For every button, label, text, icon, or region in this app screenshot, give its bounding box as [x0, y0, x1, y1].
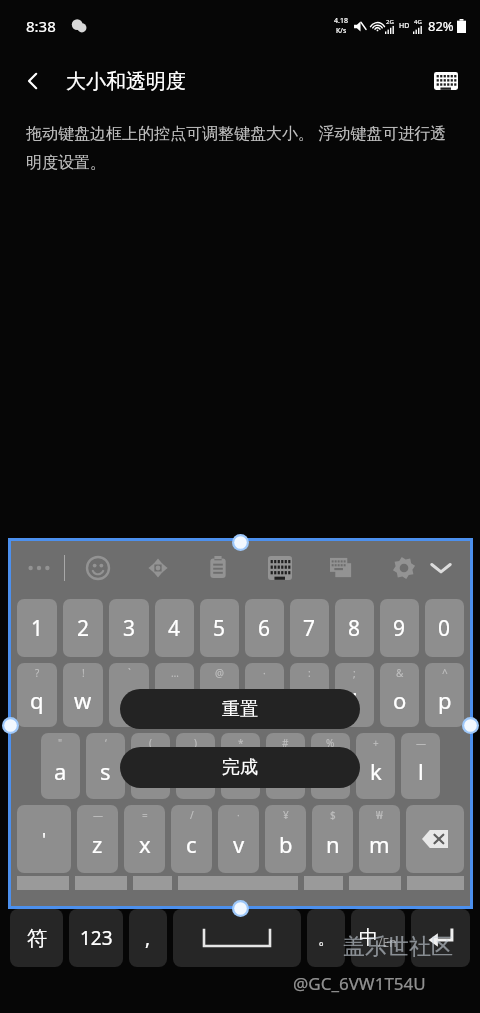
button[interactable]: 符 — [10, 909, 63, 967]
staticText: t — [216, 685, 224, 715]
button[interactable]: — — [401, 733, 440, 799]
button[interactable]: ; — [335, 663, 374, 727]
button[interactable]: Settings — [387, 551, 421, 585]
staticText: 3 — [123, 614, 136, 643]
button[interactable]: ^ — [425, 663, 464, 727]
button[interactable]: Back — [10, 58, 56, 104]
button[interactable]: 完成 — [120, 747, 360, 788]
staticText: 0 — [438, 614, 451, 643]
button[interactable]: ! — [63, 663, 103, 727]
button[interactable]: 5 — [200, 599, 239, 657]
staticText: = — [142, 808, 148, 822]
button[interactable]: ) — [176, 733, 215, 799]
button[interactable]: · — [218, 805, 259, 873]
button[interactable]: Move — [141, 551, 175, 585]
staticText: 9 — [393, 614, 406, 643]
staticText: HD — [399, 21, 410, 31]
button[interactable]: ‘ — [86, 733, 125, 799]
staticText: x — [139, 829, 151, 859]
button[interactable]: 8 — [335, 599, 374, 657]
staticText: " — [58, 736, 63, 750]
staticText: ( — [149, 736, 152, 750]
staticText: a — [54, 756, 67, 786]
button[interactable]: / — [171, 805, 212, 873]
staticText: $ — [330, 808, 336, 822]
staticText: 拖动键盘边框上的控点可调整键盘大小。 浮动键盘可进行透明度设置。 — [26, 122, 454, 172]
staticText: i — [352, 685, 358, 715]
button[interactable]: … — [155, 663, 194, 727]
staticText: 6 — [258, 614, 271, 643]
button[interactable]: 0 — [425, 599, 464, 657]
button[interactable]: ¥ — [265, 805, 306, 873]
button[interactable]: 3 — [109, 599, 149, 657]
button[interactable]: * — [221, 733, 260, 799]
button[interactable]: Delete — [406, 805, 464, 873]
button[interactable]: Keyboard layout — [263, 551, 297, 585]
button[interactable]: More — [22, 551, 56, 585]
staticText: & — [396, 666, 404, 680]
button[interactable]: ` — [109, 663, 149, 727]
staticText: p — [438, 685, 452, 715]
button[interactable]: 。 — [307, 909, 345, 967]
button[interactable]: 6 — [245, 599, 284, 657]
button[interactable]: Emoji — [81, 551, 115, 585]
staticText: · — [237, 808, 240, 822]
button[interactable]: : — [290, 663, 329, 727]
button[interactable]: Clipboard — [201, 551, 235, 585]
button[interactable]: ? — [17, 663, 57, 727]
button[interactable]: · — [245, 663, 284, 727]
button[interactable]: = — [124, 805, 165, 873]
staticText: /En — [378, 934, 397, 950]
staticText: * — [238, 736, 244, 750]
button[interactable]: ' — [17, 805, 71, 873]
button[interactable]: Space — [173, 909, 301, 967]
staticText: 4.18 — [334, 16, 348, 26]
button[interactable]: " — [41, 733, 80, 799]
staticText: 。 — [318, 928, 335, 949]
staticText: , — [145, 925, 151, 951]
staticText: z — [92, 829, 103, 859]
staticText: u — [303, 685, 317, 715]
staticText: o — [393, 685, 407, 715]
staticText: ¥ — [283, 808, 289, 822]
staticText: q — [30, 685, 44, 715]
staticText: 4G — [414, 18, 422, 26]
button[interactable]: 1 — [17, 599, 57, 657]
staticText: % — [326, 736, 335, 750]
button[interactable]: 重置 — [120, 689, 360, 729]
button[interactable]: Enter — [411, 909, 470, 967]
button[interactable]: # — [266, 733, 305, 799]
staticText: 大小和透明度 — [66, 69, 186, 94]
button[interactable]: % — [311, 733, 350, 799]
staticText: 2G — [386, 18, 394, 26]
button[interactable]: 7 — [290, 599, 329, 657]
button[interactable]: 中 — [351, 909, 405, 967]
staticText: ‘ — [105, 736, 107, 750]
button[interactable]: 4 — [155, 599, 194, 657]
staticText: 完成 — [222, 756, 258, 779]
button[interactable]: $ — [312, 805, 353, 873]
button[interactable]: ( — [131, 733, 170, 799]
staticText: ' — [42, 827, 47, 852]
button[interactable]: 123 — [69, 909, 123, 967]
staticText: 4 — [168, 614, 181, 643]
staticText: ` — [128, 666, 131, 680]
staticText: ) — [194, 736, 197, 750]
button[interactable]: + — [356, 733, 395, 799]
button[interactable]: & — [380, 663, 419, 727]
staticText: e — [123, 685, 136, 715]
button[interactable]: @ — [200, 663, 239, 727]
button[interactable]: Collapse — [423, 550, 459, 586]
button[interactable]: 2 — [63, 599, 103, 657]
staticText: 7 — [303, 614, 316, 643]
button[interactable]: 9 — [380, 599, 419, 657]
button[interactable]: , — [129, 909, 167, 967]
button[interactable]: — — [77, 805, 118, 873]
staticText: 符 — [27, 926, 47, 951]
button[interactable]: Keyboard — [424, 59, 468, 103]
button[interactable]: ₩ — [359, 805, 400, 873]
staticText: 8 — [348, 614, 361, 643]
button[interactable]: Split keyboard — [325, 551, 359, 585]
